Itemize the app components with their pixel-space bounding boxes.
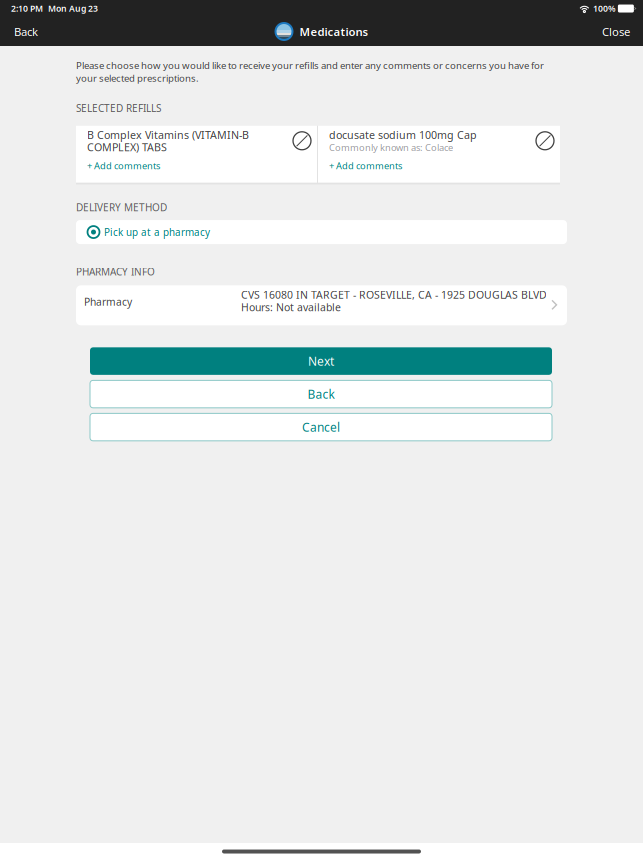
- button[interactable]: Cancel: [90, 413, 552, 441]
- button[interactable]: Pick up at a pharmacy: [76, 220, 567, 244]
- button[interactable]: Close: [589, 17, 643, 46]
- button[interactable]: B Complex Vitamins (VITAMIN-B: [76, 126, 317, 183]
- staticText: Medications: [299, 24, 368, 39]
- button[interactable]: docusate sodium 100mg Cap: [318, 126, 560, 183]
- staticText: Back: [307, 386, 334, 402]
- staticText: Pharmacy: [84, 295, 132, 308]
- staticText: Close: [602, 24, 630, 39]
- staticText: PHARMACY INFO: [76, 265, 155, 278]
- button[interactable]: Pharmacy: [76, 285, 567, 325]
- staticText: Please choose how you would like to rece…: [76, 59, 544, 84]
- staticText: Mon Aug 23: [48, 3, 98, 14]
- staticText: Hours: Not available: [241, 300, 341, 314]
- staticText: SELECTED REFILLS: [76, 101, 161, 115]
- staticText: 100%: [593, 3, 616, 14]
- staticText: + Add comments: [329, 159, 402, 172]
- button[interactable]: Next: [90, 347, 552, 375]
- staticText: COMPLEX) TABS: [87, 140, 167, 154]
- staticText: Next: [308, 353, 334, 369]
- staticText: DELIVERY METHOD: [76, 201, 167, 214]
- staticText: Back: [14, 24, 38, 39]
- button[interactable]: Back: [0, 17, 52, 46]
- staticText: B Complex Vitamins (VITAMIN-B: [87, 128, 249, 142]
- staticText: Pick up at a pharmacy: [104, 225, 210, 239]
- staticText: Cancel: [302, 419, 340, 435]
- staticText: CVS 16080 IN TARGET - ROSEVILLE, CA - 19…: [241, 288, 547, 302]
- button[interactable]: Back: [90, 380, 552, 408]
- staticText: + Add comments: [87, 159, 160, 172]
- staticText: 2:10 PM: [11, 3, 43, 14]
- staticText: Commonly known as: Colace: [329, 141, 453, 154]
- staticText: docusate sodium 100mg Cap: [329, 128, 477, 142]
